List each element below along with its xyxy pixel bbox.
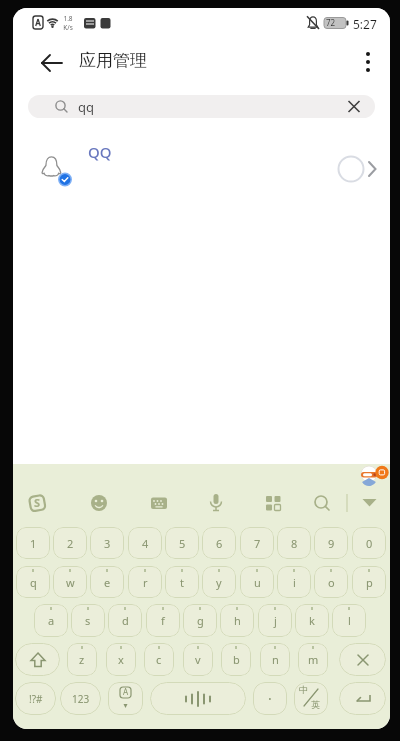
staticText: S <box>34 495 41 510</box>
button[interactable]: c <box>144 643 174 676</box>
button[interactable]: qq <box>28 95 375 118</box>
button[interactable]: w <box>53 566 87 598</box>
button[interactable] <box>89 493 109 513</box>
button[interactable]: u <box>240 566 274 598</box>
button[interactable]: 7 <box>240 527 274 559</box>
staticText: A <box>123 686 129 697</box>
button[interactable]: t <box>165 566 199 598</box>
button[interactable]: 1 <box>16 527 50 559</box>
button[interactable]: d <box>108 604 142 637</box>
staticText: p <box>366 575 373 590</box>
staticText: 123 <box>72 692 90 706</box>
button[interactable] <box>355 46 383 78</box>
staticText: r <box>143 575 148 590</box>
button[interactable]: 0 <box>352 527 386 559</box>
button[interactable]: g <box>183 604 217 637</box>
staticText: m <box>308 652 319 667</box>
button[interactable]: h <box>220 604 254 637</box>
button[interactable]: 6 <box>202 527 236 559</box>
staticText: 3 <box>104 536 111 551</box>
staticText: · <box>268 689 272 708</box>
staticText: c <box>156 652 162 667</box>
button[interactable] <box>150 682 246 715</box>
staticText: z <box>79 652 85 667</box>
staticText: u <box>254 575 261 590</box>
button[interactable]: p <box>352 566 386 598</box>
staticText: v <box>195 652 201 667</box>
button[interactable]: k <box>295 604 329 637</box>
staticText: 8 <box>291 536 298 551</box>
button[interactable]: 2 <box>53 527 87 559</box>
button[interactable] <box>339 682 386 715</box>
staticText: 中 <box>299 684 308 695</box>
staticText: 2 <box>67 536 74 551</box>
button[interactable]: 5 <box>165 527 199 559</box>
button[interactable]: z <box>67 643 97 676</box>
staticText: 1 <box>30 536 37 551</box>
button[interactable] <box>149 493 169 513</box>
staticText: 0 <box>366 536 373 551</box>
staticText: e <box>104 575 111 590</box>
staticText: b <box>233 652 240 667</box>
button[interactable] <box>37 48 67 78</box>
button[interactable]: e <box>90 566 124 598</box>
button[interactable]: 123 <box>60 682 101 715</box>
button[interactable] <box>339 643 386 676</box>
button[interactable]: A <box>108 682 143 715</box>
staticText: 4 <box>142 536 149 551</box>
button[interactable]: !?# <box>15 682 56 715</box>
button[interactable]: QQ <box>13 134 390 196</box>
staticText: k <box>309 613 315 628</box>
button[interactable]: v <box>183 643 213 676</box>
staticText: f <box>161 613 165 628</box>
button[interactable]: l <box>332 604 366 637</box>
button[interactable]: n <box>260 643 290 676</box>
staticText: i <box>293 575 296 590</box>
staticText: 5:27 <box>353 16 377 32</box>
staticText: 5 <box>179 536 186 551</box>
button[interactable]: S <box>27 493 47 513</box>
button[interactable]: s <box>71 604 105 637</box>
button[interactable] <box>312 493 332 513</box>
button[interactable]: j <box>258 604 292 637</box>
button[interactable]: q <box>16 566 50 598</box>
button[interactable]: · <box>253 682 287 715</box>
staticText: q <box>30 575 37 590</box>
button[interactable]: a <box>34 604 68 637</box>
staticText: 6 <box>216 536 223 551</box>
staticText: QQ <box>88 142 112 162</box>
button[interactable]: 9 <box>314 527 348 559</box>
button[interactable]: i <box>277 566 311 598</box>
button[interactable] <box>360 495 380 511</box>
button[interactable]: o <box>314 566 348 598</box>
staticText: qq <box>78 98 94 116</box>
button[interactable]: f <box>146 604 180 637</box>
button[interactable]: r <box>128 566 162 598</box>
staticText: 9 <box>328 536 335 551</box>
staticText: w <box>66 575 75 590</box>
staticText: a <box>48 613 55 628</box>
staticText: 英 <box>311 699 320 710</box>
button[interactable] <box>15 643 60 676</box>
button[interactable] <box>206 492 226 514</box>
staticText: 应用管理 <box>79 50 147 71</box>
staticText: t <box>180 575 184 590</box>
button[interactable]: y <box>202 566 236 598</box>
button[interactable]: 中 <box>294 682 328 715</box>
staticText: s <box>85 613 91 628</box>
staticText: 1.8 K/s <box>63 14 73 32</box>
button[interactable]: m <box>298 643 328 676</box>
button[interactable]: 4 <box>128 527 162 559</box>
button[interactable]: 8 <box>277 527 311 559</box>
staticText: n <box>272 652 279 667</box>
staticText: h <box>234 613 241 628</box>
button[interactable]: b <box>221 643 251 676</box>
staticText: x <box>118 652 124 667</box>
button[interactable] <box>263 493 283 513</box>
staticText: 72 <box>326 17 336 28</box>
staticText: y <box>216 575 222 590</box>
button[interactable]: x <box>106 643 136 676</box>
staticText: 7 <box>254 536 261 551</box>
staticText: l <box>348 613 351 628</box>
button[interactable]: 3 <box>90 527 124 559</box>
